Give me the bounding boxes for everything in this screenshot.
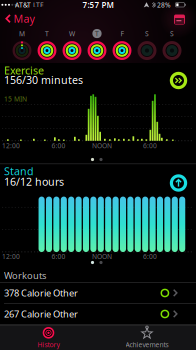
- button[interactable]: S: [160, 28, 184, 61]
- staticText: S: [145, 29, 149, 38]
- button[interactable]: Achievements: [112, 326, 182, 349]
- button[interactable]: S: [135, 28, 159, 61]
- button[interactable]: F: [110, 28, 134, 61]
- button[interactable]: T: [85, 28, 109, 61]
- staticText: Exercise: [4, 63, 44, 77]
- button[interactable]: T: [35, 28, 59, 61]
- staticText: May: [14, 11, 35, 26]
- staticText: 15 MIN: [4, 95, 27, 103]
- staticText: 7:57 PM: [82, 0, 113, 10]
- staticText: 12:00: [2, 252, 20, 261]
- staticText: S: [170, 29, 174, 38]
- staticText: 267 Calorie Other: [4, 308, 78, 320]
- button[interactable]: 378 Calorie Other: [4, 287, 178, 299]
- staticText: AT&T: [15, 0, 31, 9]
- button[interactable]: Back: [4, 12, 36, 26]
- staticText: NOON: [92, 141, 112, 150]
- staticText: 378 Calorie Other: [4, 287, 78, 299]
- staticText: History: [37, 340, 59, 349]
- staticText: Stand: [4, 164, 34, 178]
- staticText: 28%: [157, 0, 171, 9]
- staticText: Achievements: [125, 340, 168, 349]
- button[interactable]: M: [10, 28, 34, 61]
- button[interactable]: 267 Calorie Other: [4, 308, 178, 320]
- staticText: 6:00: [143, 252, 157, 261]
- staticText: NOON: [92, 252, 112, 261]
- staticText: 6:00: [143, 141, 157, 150]
- staticText: 6:00: [51, 252, 65, 261]
- staticText: Workouts: [4, 269, 46, 282]
- staticText: 6:00: [51, 141, 65, 150]
- staticText: 16/12 hours: [4, 174, 64, 189]
- button[interactable]: W: [60, 28, 84, 61]
- button[interactable]: History: [18, 326, 78, 349]
- staticText: W: [69, 29, 75, 38]
- staticText: F: [120, 29, 123, 38]
- staticText: T: [95, 29, 99, 38]
- staticText: 12:00: [2, 141, 20, 150]
- staticText: T: [45, 29, 49, 38]
- staticText: LTE: [33, 0, 44, 9]
- staticText: 156/30 minutes: [4, 73, 83, 87]
- button[interactable]: Calendar: [173, 13, 185, 25]
- staticText: M: [19, 29, 25, 38]
